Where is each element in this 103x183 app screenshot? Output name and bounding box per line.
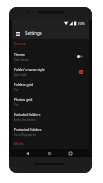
staticText: Auto style — [14, 73, 27, 77]
staticText: Pro — [14, 103, 19, 107]
button[interactable]: Photos grid — [12, 94, 89, 109]
button[interactable]: Protected folders — [12, 124, 89, 139]
staticText: Excluded folders — [14, 112, 41, 117]
staticText: Theme — [14, 52, 25, 57]
staticText: Media — [14, 142, 24, 146]
staticText: 100% — [78, 22, 85, 26]
staticText: List of Registered — [14, 133, 36, 137]
staticText: Settings — [25, 30, 42, 36]
staticText: Folder's name style — [14, 67, 45, 72]
staticText: Folders grid — [14, 82, 34, 87]
button[interactable]: Recent apps — [65, 149, 76, 157]
button[interactable]: Folder's name style — [12, 64, 89, 79]
button[interactable]: Theme — [12, 49, 89, 64]
staticText: Photos grid — [14, 97, 33, 102]
button[interactable]: Back — [22, 149, 33, 157]
button[interactable]: Open navigation menu — [13, 29, 22, 38]
staticText: Dark theme — [14, 58, 29, 62]
button[interactable]: Excluded folders — [12, 109, 89, 124]
button[interactable]: Folders grid — [12, 79, 89, 94]
button[interactable]: Home — [44, 149, 55, 157]
staticText: General — [14, 42, 26, 46]
staticText: Protected folders — [14, 127, 42, 132]
staticText: Pro — [14, 88, 19, 92]
staticText: Select the folders — [14, 118, 36, 122]
